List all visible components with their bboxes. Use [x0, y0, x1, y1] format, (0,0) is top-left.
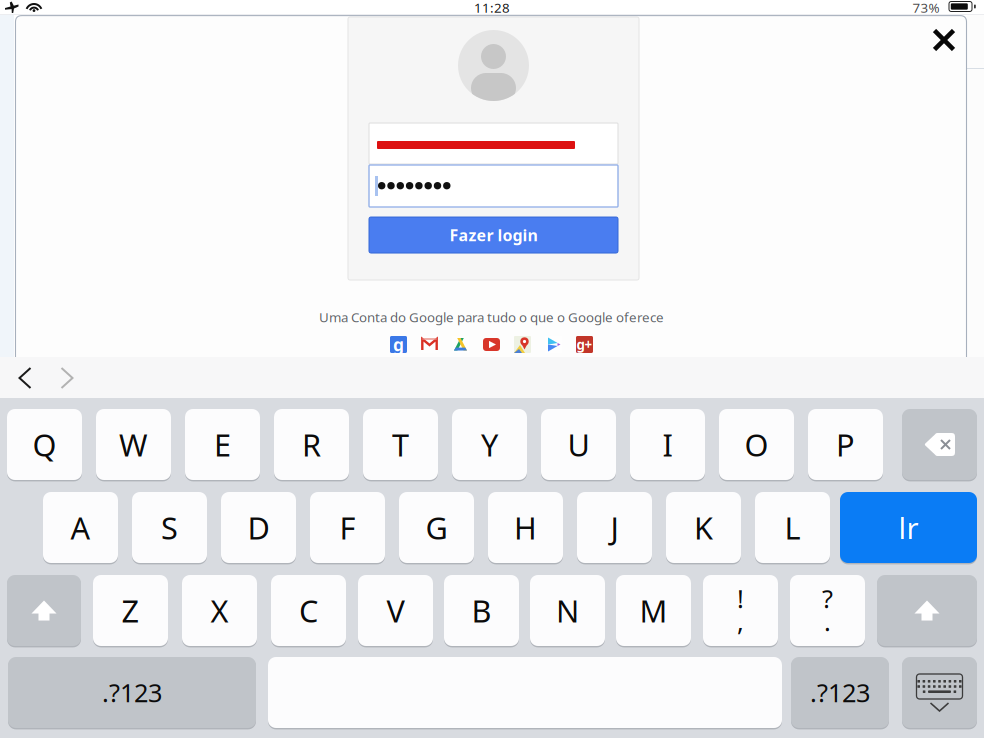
staticText: !	[737, 582, 744, 615]
staticText: Y	[481, 424, 498, 465]
button[interactable]: I	[630, 409, 705, 480]
button[interactable]: Y	[452, 409, 527, 480]
button[interactable]: !	[703, 575, 778, 646]
staticText: E	[214, 424, 231, 465]
button[interactable]: T	[363, 409, 438, 480]
button[interactable]: Q	[7, 409, 82, 480]
button[interactable]: E	[185, 409, 260, 480]
staticText: .?123	[810, 676, 870, 709]
staticText: X	[210, 590, 228, 631]
staticText: N	[556, 590, 579, 631]
staticText: .	[824, 605, 831, 638]
button[interactable]: Previous field	[7, 360, 43, 396]
button[interactable]: P	[808, 409, 883, 480]
staticText: A	[70, 507, 90, 548]
staticText: ,	[737, 605, 744, 638]
button[interactable]: U	[541, 409, 616, 480]
staticText: C	[299, 590, 318, 631]
button[interactable]: D	[221, 492, 296, 563]
staticText: R	[302, 424, 321, 465]
staticText: Q	[32, 424, 56, 465]
staticText: I	[662, 424, 672, 465]
button[interactable]: M	[616, 575, 691, 646]
staticText: S	[161, 507, 178, 548]
button[interactable]: Next field	[49, 360, 85, 396]
button[interactable]: G	[399, 492, 474, 563]
staticText: G	[425, 507, 447, 548]
button[interactable]: Shift	[877, 575, 977, 646]
button[interactable]: .?123	[8, 657, 256, 728]
button[interactable]: W	[96, 409, 171, 480]
staticText: ?	[822, 582, 833, 615]
staticText: 73%	[912, 0, 939, 16]
staticText: g	[393, 333, 404, 356]
button[interactable]: B	[444, 575, 519, 646]
staticText: T	[392, 424, 409, 465]
button[interactable]: .?123	[791, 657, 889, 728]
staticText: g+	[576, 336, 592, 353]
staticText: lr	[898, 508, 918, 547]
staticText: V	[386, 590, 404, 631]
staticText: M	[639, 590, 667, 631]
staticText: P	[836, 424, 855, 465]
button[interactable]: ?	[790, 575, 865, 646]
button[interactable]: Hide keyboard	[902, 657, 977, 728]
staticText: D	[247, 507, 269, 548]
button[interactable]: Fazer login	[369, 217, 618, 253]
staticText: .?123	[102, 676, 162, 709]
staticText: Z	[121, 590, 139, 631]
button[interactable]: S	[132, 492, 207, 563]
button[interactable]: A	[43, 492, 118, 563]
staticText: F	[339, 507, 355, 548]
button[interactable]: Delete	[902, 409, 977, 480]
button[interactable]: N	[530, 575, 605, 646]
staticText: L	[784, 507, 800, 548]
staticText: B	[471, 590, 491, 631]
staticText: J	[610, 507, 618, 548]
button[interactable]: F	[310, 492, 385, 563]
button[interactable]: X	[182, 575, 257, 646]
button[interactable]: K	[666, 492, 741, 563]
button[interactable]: lr	[840, 492, 977, 563]
button[interactable]: Close	[919, 15, 969, 65]
button[interactable]: Z	[93, 575, 168, 646]
button[interactable]: C	[271, 575, 346, 646]
staticText: 11:28	[474, 0, 510, 16]
button[interactable]: O	[719, 409, 794, 480]
staticText: Fazer login	[449, 224, 537, 246]
button[interactable]: J	[577, 492, 652, 563]
button[interactable]: V	[358, 575, 433, 646]
staticText: O	[744, 424, 768, 465]
button[interactable]: H	[488, 492, 563, 563]
button[interactable]: R	[274, 409, 349, 480]
button[interactable]: Shift	[7, 575, 81, 646]
staticText: K	[694, 507, 713, 548]
button[interactable]: L	[755, 492, 830, 563]
staticText: H	[514, 507, 537, 548]
staticText: Uma Conta do Google para tudo o que o Go…	[319, 308, 664, 326]
staticText: W	[119, 424, 148, 465]
staticText: U	[567, 424, 589, 465]
